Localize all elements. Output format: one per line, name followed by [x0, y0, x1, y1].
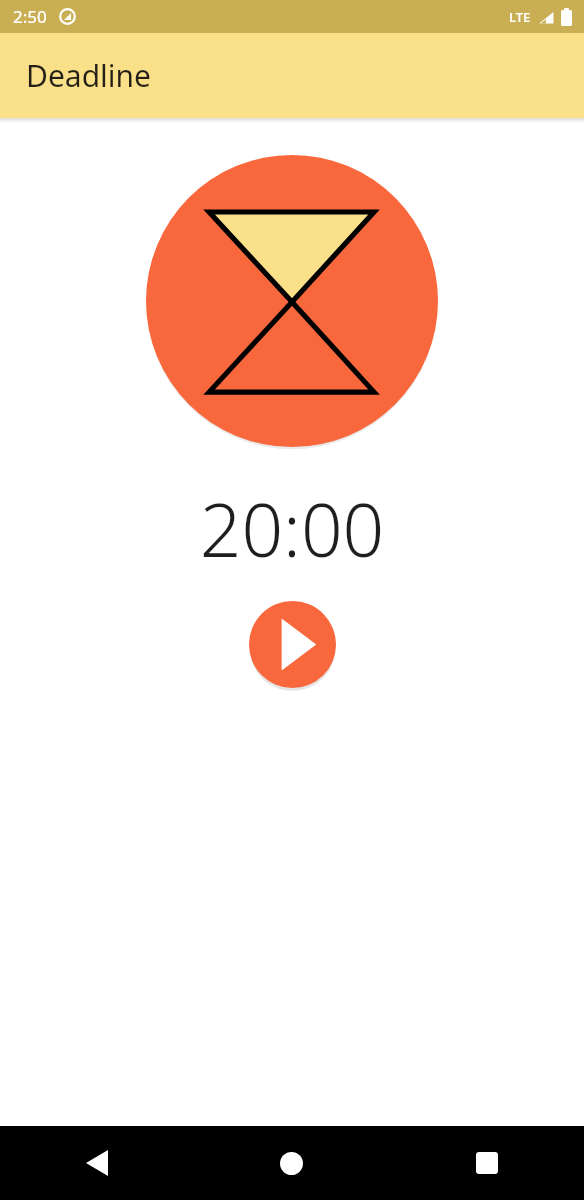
- staticText: Deadline: [26, 55, 152, 96]
- staticText: 2:50: [13, 5, 47, 28]
- staticText: LTE: [509, 8, 531, 26]
- button[interactable]: Back: [0, 1126, 194, 1200]
- button[interactable]: Start timer: [249, 601, 336, 688]
- button[interactable]: Home: [194, 1126, 389, 1200]
- button[interactable]: Hourglass timer: [146, 155, 438, 447]
- button[interactable]: Recent apps: [389, 1126, 584, 1200]
- staticText: 20:00: [0, 479, 584, 578]
